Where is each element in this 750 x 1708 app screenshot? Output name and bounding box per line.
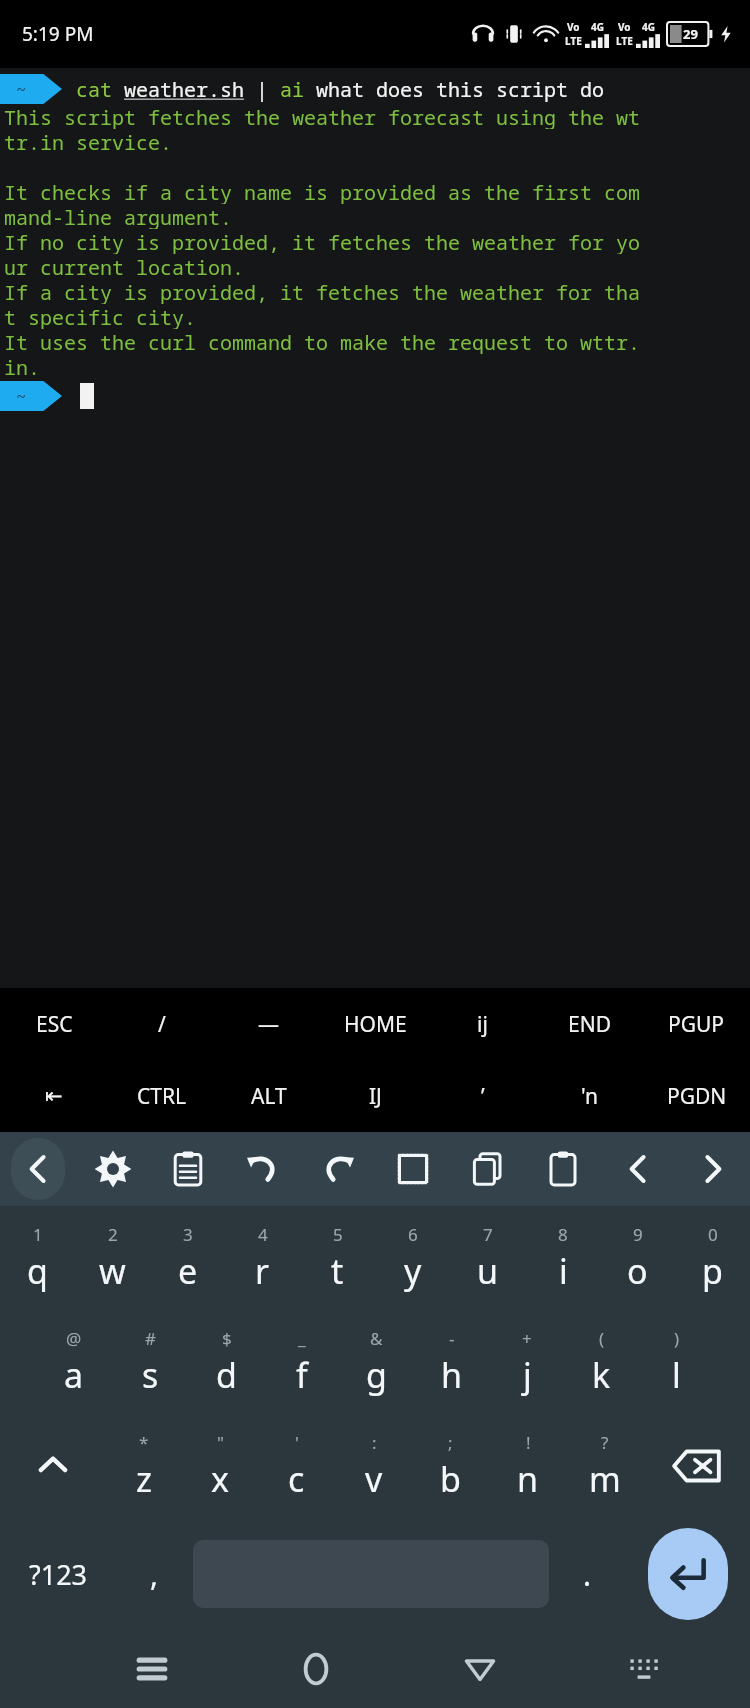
- staticText: ~: [16, 78, 27, 101]
- staticText: IJ: [369, 1082, 382, 1111]
- staticText: o: [627, 1248, 648, 1294]
- button[interactable]: 8: [525, 1206, 600, 1310]
- button[interactable]: PGDN: [643, 1060, 750, 1132]
- button[interactable]: -: [414, 1310, 489, 1414]
- staticText: +: [522, 1327, 532, 1350]
- button[interactable]: :: [335, 1414, 412, 1518]
- button[interactable]: Back: [434, 1630, 526, 1708]
- staticText: 9: [633, 1223, 643, 1246]
- button[interactable]: IJ: [322, 1060, 429, 1132]
- button[interactable]: Undo: [225, 1132, 300, 1206]
- staticText: 4G: [591, 20, 604, 34]
- button[interactable]: 1: [0, 1206, 75, 1310]
- button[interactable]: Enter: [648, 1528, 728, 1620]
- staticText: l: [672, 1352, 681, 1398]
- staticText: 0: [708, 1223, 718, 1246]
- staticText: mand-line argument.: [4, 204, 232, 229]
- button[interactable]: +: [489, 1310, 564, 1414]
- staticText: e: [178, 1248, 198, 1294]
- staticText: 1: [33, 1223, 43, 1246]
- button[interactable]: ?123: [0, 1518, 116, 1630]
- button[interactable]: 0: [675, 1206, 750, 1310]
- button[interactable]: .: [549, 1518, 626, 1630]
- staticText: k: [592, 1352, 611, 1398]
- staticText: &: [370, 1327, 383, 1350]
- staticText: y: [404, 1248, 422, 1294]
- staticText: v: [365, 1456, 383, 1502]
- staticText: ": [217, 1431, 224, 1454]
- staticText: 4G: [642, 20, 655, 34]
- button[interactable]: PGUP: [643, 988, 750, 1060]
- button[interactable]: 'n: [536, 1060, 643, 1132]
- staticText: m: [589, 1456, 621, 1502]
- staticText: !: [526, 1431, 531, 1454]
- button[interactable]: Recents: [106, 1630, 198, 1708]
- button[interactable]: ): [639, 1310, 714, 1414]
- button[interactable]: ESC: [0, 988, 108, 1060]
- button[interactable]: HOME: [322, 988, 429, 1060]
- button[interactable]: ,: [116, 1518, 193, 1630]
- button[interactable]: 7: [450, 1206, 525, 1310]
- button[interactable]: ’: [429, 1060, 536, 1132]
- button[interactable]: ij: [429, 988, 536, 1060]
- button[interactable]: _: [264, 1310, 339, 1414]
- staticText: Vo: [618, 20, 631, 34]
- staticText: ⇤: [45, 1084, 63, 1108]
- button[interactable]: END: [536, 988, 643, 1060]
- staticText: —: [258, 1010, 279, 1039]
- button[interactable]: &: [339, 1310, 414, 1414]
- button[interactable]: Home: [270, 1630, 362, 1708]
- button[interactable]: 3: [150, 1206, 225, 1310]
- staticText: 4: [258, 1223, 268, 1246]
- button[interactable]: @: [36, 1310, 112, 1414]
- staticText: j: [523, 1352, 532, 1398]
- button[interactable]: $: [188, 1310, 264, 1414]
- other: Headset: [470, 21, 496, 47]
- button[interactable]: (: [564, 1310, 639, 1414]
- button[interactable]: 4: [225, 1206, 300, 1310]
- button[interactable]: ;: [412, 1414, 489, 1518]
- button[interactable]: Copy: [450, 1132, 525, 1206]
- button[interactable]: Backspace: [643, 1414, 750, 1518]
- staticText: ): [674, 1327, 680, 1350]
- button[interactable]: ': [258, 1414, 335, 1518]
- button[interactable]: /: [108, 988, 215, 1060]
- staticText: HOME: [344, 1010, 407, 1039]
- button[interactable]: Back: [0, 1132, 75, 1206]
- staticText: 5: [333, 1223, 343, 1246]
- button[interactable]: #: [112, 1310, 188, 1414]
- button[interactable]: Clipboard list: [150, 1132, 225, 1206]
- button[interactable]: 5: [300, 1206, 375, 1310]
- button[interactable]: ALT: [215, 1060, 322, 1132]
- button[interactable]: Paste: [525, 1132, 600, 1206]
- button[interactable]: Previous: [600, 1132, 675, 1206]
- button[interactable]: ": [182, 1414, 258, 1518]
- staticText: PGUP: [668, 1010, 725, 1039]
- staticText: :: [372, 1431, 377, 1454]
- staticText: ij: [477, 1010, 488, 1039]
- staticText: #: [145, 1327, 156, 1350]
- button[interactable]: *: [106, 1414, 182, 1518]
- button[interactable]: 2: [75, 1206, 150, 1310]
- button[interactable]: Settings: [75, 1132, 150, 1206]
- button[interactable]: !: [489, 1414, 566, 1518]
- button[interactable]: 9: [600, 1206, 675, 1310]
- button[interactable]: Select: [375, 1132, 450, 1206]
- staticText: It checks if a city name is provided as …: [4, 179, 640, 204]
- button[interactable]: Keyboard: [598, 1630, 690, 1708]
- staticText: u: [477, 1248, 499, 1294]
- staticText: LTE: [565, 34, 582, 48]
- button[interactable]: ?: [566, 1414, 643, 1518]
- staticText: w: [99, 1248, 126, 1294]
- button[interactable]: Shift: [0, 1414, 106, 1518]
- staticText: s: [142, 1352, 159, 1398]
- button[interactable]: —: [215, 988, 322, 1060]
- button[interactable]: ⇤: [0, 1060, 108, 1132]
- button[interactable]: 6: [375, 1206, 450, 1310]
- staticText: p: [702, 1248, 723, 1294]
- button[interactable]: Next: [675, 1132, 750, 1206]
- staticText: q: [27, 1248, 48, 1294]
- button[interactable]: CTRL: [108, 1060, 215, 1132]
- button[interactable]: Redo: [300, 1132, 375, 1206]
